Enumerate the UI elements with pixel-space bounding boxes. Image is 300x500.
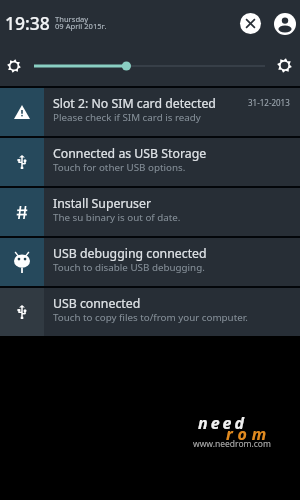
button[interactable]: Auto brightness (3, 55, 24, 76)
staticText: Slot 2: No SIM card detected (53, 95, 216, 112)
staticText: 09 April 2015г. (55, 21, 107, 31)
button[interactable]: Clear all notifications (237, 10, 264, 37)
staticText: USB connected (53, 295, 141, 312)
staticText: USB debugging connected (53, 245, 207, 262)
staticText: 19:38 (5, 11, 50, 35)
staticText: The su binary is out of date. (53, 211, 181, 224)
staticText: rom (226, 423, 272, 445)
staticText: Touch for other USB options. (53, 161, 186, 174)
button[interactable]: Install Superuser (0, 188, 300, 236)
button[interactable]: Slot 2: No SIM card detected (0, 88, 300, 136)
button[interactable]: Brightness slider (30, 57, 270, 75)
staticText: Install Superuser (53, 195, 151, 212)
staticText: Please check if SIM card is ready (53, 111, 201, 124)
staticText: Touch to copy files to/from your compute… (53, 311, 248, 324)
staticText: Connected as USB Storage (53, 145, 207, 162)
button[interactable]: USB debugging connected (0, 238, 300, 286)
button[interactable]: USB connected (0, 288, 300, 336)
button[interactable]: Settings (272, 53, 296, 77)
staticText: 31-12-2013 (248, 97, 290, 108)
staticText: Touch to disable USB debugging. (53, 261, 205, 274)
staticText: need (198, 412, 247, 434)
staticText: Thursday (55, 14, 89, 24)
button[interactable]: Connected as USB Storage (0, 138, 300, 186)
staticText: www.needrom.com (193, 438, 271, 450)
button[interactable]: User profile (271, 10, 298, 37)
